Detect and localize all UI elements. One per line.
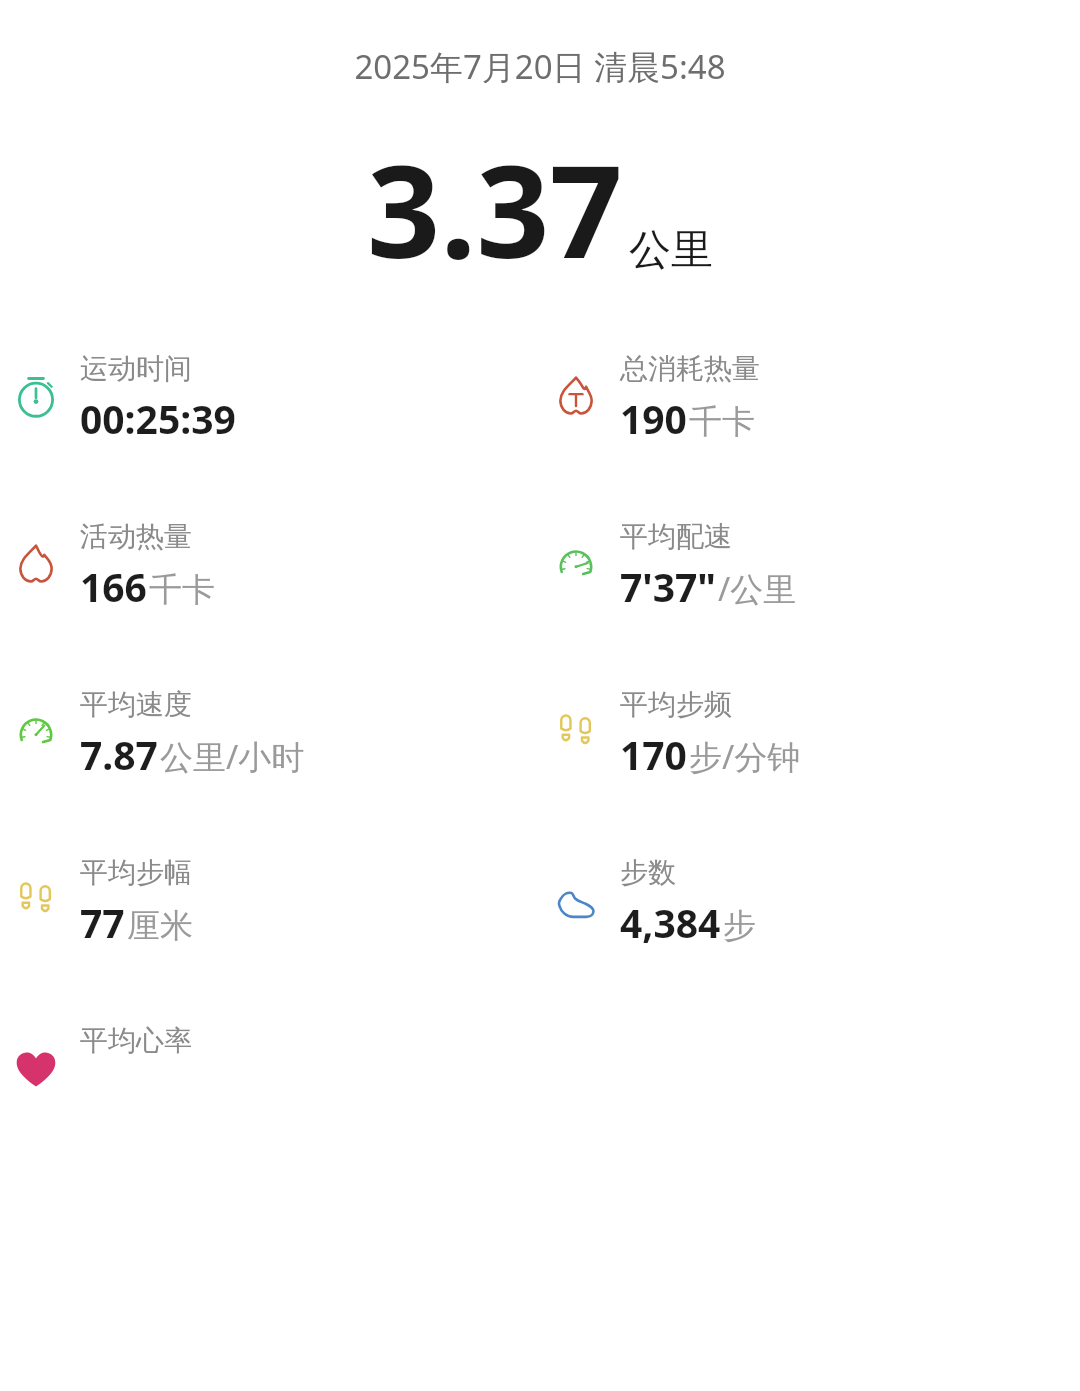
- staticText: 平均配速: [620, 519, 732, 554]
- staticText: 平均心率: [80, 1023, 192, 1058]
- button[interactable]: 平均速度: [0, 687, 540, 781]
- staticText: 厘米: [127, 905, 193, 947]
- button[interactable]: 平均心率: [0, 1023, 540, 1117]
- staticText: 170: [620, 728, 687, 781]
- staticText: /公里: [718, 566, 797, 611]
- staticText: 平均速度: [80, 687, 192, 722]
- button[interactable]: 运动时间: [0, 351, 540, 445]
- staticText: 公里: [629, 224, 713, 277]
- staticText: 千卡: [689, 401, 755, 443]
- staticText: 190: [620, 392, 687, 445]
- button[interactable]: 平均步频: [540, 687, 1080, 781]
- button[interactable]: 平均步幅: [0, 855, 540, 949]
- staticText: 00:25:39: [80, 392, 236, 445]
- staticText: 2025年7月20日 清晨5:48: [0, 44, 1080, 89]
- staticText: 166: [80, 560, 147, 613]
- button[interactable]: 活动热量: [0, 519, 540, 613]
- staticText: 运动时间: [80, 351, 192, 386]
- staticText: 步: [723, 905, 756, 947]
- button[interactable]: 步数: [540, 855, 1080, 949]
- button[interactable]: 平均配速: [540, 519, 1080, 613]
- staticText: 3.37: [367, 121, 623, 295]
- staticText: 总消耗热量: [620, 351, 760, 386]
- staticText: 步/分钟: [689, 734, 801, 779]
- button[interactable]: 总消耗热量: [540, 351, 1080, 445]
- staticText: 步数: [620, 855, 676, 890]
- staticText: 公里/小时: [160, 734, 305, 779]
- staticText: 7'37": [620, 560, 716, 613]
- staticText: 4,384: [620, 896, 721, 949]
- staticText: 平均步频: [620, 687, 732, 722]
- staticText: 7.87: [80, 728, 158, 781]
- staticText: 平均步幅: [80, 855, 192, 890]
- staticText: 77: [80, 896, 125, 949]
- staticText: 千卡: [149, 569, 215, 611]
- staticText: 活动热量: [80, 519, 192, 554]
